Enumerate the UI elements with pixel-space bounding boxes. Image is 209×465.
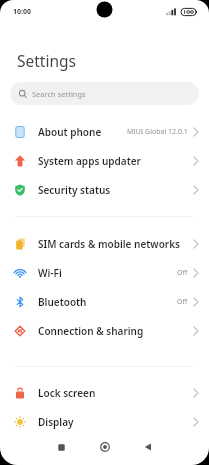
staticText: 10:00 bbox=[13, 7, 31, 17]
staticText: Search settings bbox=[32, 89, 86, 99]
staticText: SIM cards & mobile networks bbox=[38, 237, 180, 251]
button[interactable] bbox=[40, 429, 83, 465]
button[interactable]: Security status bbox=[0, 175, 209, 204]
button[interactable] bbox=[83, 429, 126, 465]
staticText: Connection & sharing bbox=[38, 324, 144, 338]
staticText: About phone bbox=[38, 125, 102, 139]
button[interactable]: Connection & sharing bbox=[0, 316, 209, 345]
button[interactable]: Lock screen bbox=[0, 378, 209, 407]
staticText: Display bbox=[38, 415, 74, 429]
button[interactable]: Display bbox=[0, 407, 209, 436]
staticText: Bluetooth bbox=[38, 295, 87, 309]
staticText: Settings bbox=[17, 50, 76, 71]
staticText: Off bbox=[177, 268, 188, 278]
button[interactable]: SIM cards & mobile networks bbox=[0, 229, 209, 258]
staticText: Off bbox=[177, 297, 188, 307]
staticText: MIUI Global 12.0.1 bbox=[127, 127, 188, 137]
button[interactable]: Wi-Fi bbox=[0, 258, 209, 287]
button[interactable]: System apps updater bbox=[0, 146, 209, 175]
staticText: Wi-Fi bbox=[38, 266, 62, 280]
button[interactable] bbox=[126, 429, 169, 465]
staticText: System apps updater bbox=[38, 154, 141, 168]
button[interactable]: Bluetooth bbox=[0, 287, 209, 316]
button[interactable]: Search settings bbox=[10, 82, 199, 105]
staticText: Lock screen bbox=[38, 386, 96, 400]
button[interactable]: About phone bbox=[0, 117, 209, 146]
staticText: Security status bbox=[38, 183, 111, 197]
